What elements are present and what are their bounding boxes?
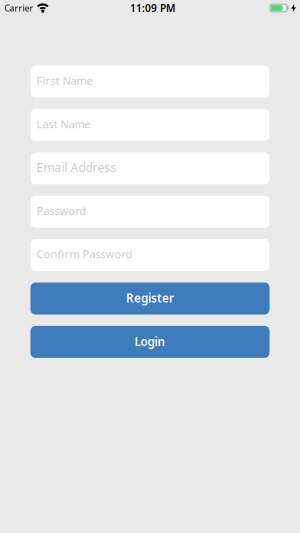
staticText: Last Name <box>36 117 90 131</box>
staticText: Login <box>134 334 165 349</box>
staticText: Register <box>126 290 174 306</box>
button[interactable]: Login <box>30 326 269 358</box>
staticText: Password <box>36 203 86 218</box>
button[interactable]: Last Name <box>30 109 269 141</box>
staticText: Confirm Password <box>36 247 132 261</box>
staticText: Carrier <box>4 2 33 14</box>
button[interactable]: Email Address <box>30 152 269 184</box>
button[interactable]: Confirm Password <box>30 239 269 271</box>
staticText: First Name <box>36 73 92 88</box>
button[interactable]: First Name <box>30 65 269 97</box>
button[interactable]: Register <box>30 282 269 314</box>
staticText: 11:09 PM <box>130 1 175 15</box>
button[interactable]: Password <box>30 196 269 228</box>
staticText: Email Address <box>36 159 116 175</box>
